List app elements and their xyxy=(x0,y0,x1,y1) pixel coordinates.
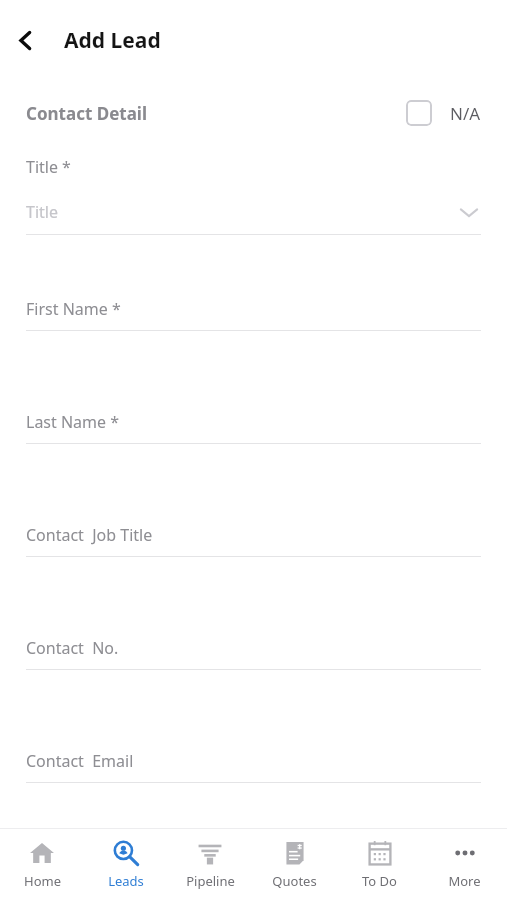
button[interactable]: Not applicable xyxy=(406,96,481,130)
button[interactable]: Contact Email xyxy=(26,750,481,772)
button[interactable]: Contact Job Title xyxy=(26,524,481,546)
staticText: Contact No. xyxy=(26,637,119,659)
staticText: Pipeline xyxy=(186,872,235,890)
button[interactable]: Contact No. xyxy=(26,637,481,659)
button[interactable]: First Name * xyxy=(26,298,481,320)
staticText: Contact Job Title xyxy=(26,524,153,546)
staticText: Contact Detail xyxy=(26,102,406,125)
button[interactable]: Title xyxy=(26,200,481,224)
staticText: First Name * xyxy=(26,298,121,320)
staticText: Add Lead xyxy=(64,26,161,55)
staticText: More xyxy=(448,872,481,890)
staticText: Quotes xyxy=(272,872,317,890)
staticText: To Do xyxy=(362,872,397,890)
other: Not applicable xyxy=(406,100,432,126)
button[interactable]: Last Name * xyxy=(26,411,481,433)
staticText: Title * xyxy=(26,156,71,178)
staticText: Last Name * xyxy=(26,411,120,433)
button[interactable]: Quotes xyxy=(252,829,337,900)
staticText: Leads xyxy=(108,872,144,890)
button[interactable]: Back xyxy=(2,17,48,63)
staticText: N/A xyxy=(450,102,481,125)
other: Open title list xyxy=(457,200,481,224)
button[interactable]: Home xyxy=(0,829,84,900)
staticText: Contact Email xyxy=(26,750,134,772)
button[interactable]: Pipeline xyxy=(168,829,252,900)
button[interactable]: Leads xyxy=(84,829,168,900)
button[interactable]: More xyxy=(422,829,507,900)
staticText: Home xyxy=(24,872,61,890)
staticText: Title xyxy=(26,201,457,223)
button[interactable]: To Do xyxy=(337,829,422,900)
